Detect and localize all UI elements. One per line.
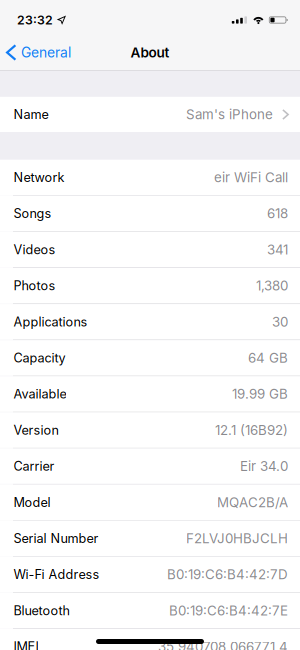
staticText: Version <box>13 422 58 438</box>
staticText: 64 GB <box>248 350 288 366</box>
staticText: Wi-Fi Address <box>13 567 99 582</box>
staticText: Name <box>13 107 48 122</box>
staticText: Serial Number <box>13 531 98 546</box>
staticText: MQAC2B/A <box>217 494 288 510</box>
staticText: 618 <box>267 205 288 221</box>
staticText: Available <box>13 386 66 402</box>
staticText: B0:19:C6:B4:42:7E <box>169 602 288 619</box>
button[interactable]: Photos <box>0 268 300 303</box>
staticText: Bluetooth <box>13 603 69 618</box>
staticText: 12.1 (16B92) <box>215 422 288 438</box>
button[interactable]: Available <box>0 376 300 412</box>
staticText: 341 <box>267 241 288 258</box>
button[interactable]: Applications <box>0 304 300 339</box>
staticText: eir WiFi Call <box>214 169 288 185</box>
staticText: Network <box>13 170 64 185</box>
button[interactable]: Capacity <box>0 340 300 376</box>
staticText: General <box>21 44 71 61</box>
button[interactable]: Carrier <box>0 448 300 484</box>
button[interactable]: General <box>0 40 79 64</box>
staticText: Songs <box>13 206 51 221</box>
button[interactable]: Serial Number <box>0 521 300 556</box>
button[interactable]: IMEI <box>0 629 300 650</box>
staticText: Carrier <box>13 458 54 474</box>
staticText: 19.99 GB <box>232 386 288 402</box>
staticText: About <box>130 44 169 61</box>
staticText: 30 <box>272 314 288 330</box>
staticText: 35 940708 066771 4 <box>158 639 288 650</box>
staticText: IMEI <box>13 639 38 650</box>
button[interactable]: Version <box>0 412 300 448</box>
staticText: 23:32 <box>17 13 53 27</box>
button[interactable]: Network <box>0 160 300 195</box>
staticText: Sam's iPhone <box>186 106 273 122</box>
staticText: F2LVJ0HBJCLH <box>186 530 288 546</box>
staticText: Eir 34.0 <box>240 458 288 474</box>
staticText: Capacity <box>13 350 65 365</box>
button[interactable]: Bluetooth <box>0 593 300 628</box>
button[interactable]: Songs <box>0 196 300 231</box>
staticText: B0:19:C6:B4:42:7D <box>167 566 288 582</box>
button[interactable]: Name <box>0 97 300 132</box>
staticText: 1,380 <box>256 278 288 294</box>
button[interactable]: Wi-Fi Address <box>0 557 300 592</box>
staticText: Photos <box>13 278 55 293</box>
button[interactable]: Model <box>0 485 300 520</box>
button[interactable]: Videos <box>0 232 300 267</box>
staticText: Applications <box>13 314 87 329</box>
staticText: Model <box>13 495 50 510</box>
staticText: Videos <box>13 242 55 257</box>
